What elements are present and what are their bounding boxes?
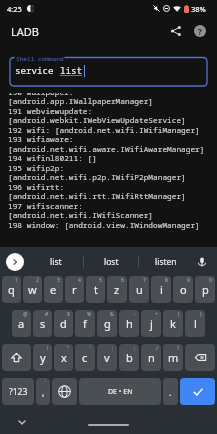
staticText: 198 window: [android.view.IWindowManager…	[8, 220, 200, 231]
staticText: [android.app.IWallpaperManager]	[8, 96, 154, 107]
staticText: w	[28, 282, 37, 297]
staticText: list	[50, 256, 62, 268]
button[interactable]: q	[2, 276, 21, 303]
staticText: a	[18, 316, 25, 331]
staticText: 196 wifirtt:	[8, 182, 65, 193]
staticText: q	[8, 282, 15, 297]
staticText: /	[156, 345, 158, 352]
staticText: ?123	[9, 386, 28, 398]
staticText: ,	[42, 386, 45, 398]
button[interactable]: m	[163, 344, 183, 371]
button[interactable]: j	[141, 310, 161, 337]
button[interactable]: o	[173, 276, 193, 303]
button[interactable]: Share	[164, 19, 188, 43]
button[interactable]: p	[195, 276, 215, 303]
staticText: 4	[78, 277, 81, 284]
staticText: 4:25	[7, 4, 22, 14]
staticText: 3	[57, 277, 60, 284]
button[interactable]: Shift	[2, 344, 31, 371]
staticText: )	[200, 311, 202, 318]
staticText: [android.net.wifi.rtt.IWifiRttManager]	[8, 191, 186, 202]
staticText: :	[112, 345, 114, 352]
staticText: -	[134, 311, 136, 318]
staticText: [android.net.wifi.IWifiScanner]	[8, 210, 154, 221]
button[interactable]: .	[163, 378, 178, 405]
button[interactable]: x	[54, 344, 73, 371]
button[interactable]: ,	[36, 378, 50, 405]
button[interactable]: v	[97, 344, 117, 371]
button[interactable]: s	[33, 310, 52, 337]
staticText: [android.net.wifi.aware.IWifiAwareManage…	[8, 144, 205, 155]
button[interactable]: lost	[84, 247, 138, 276]
staticText: 0	[209, 277, 212, 284]
staticText: z	[114, 282, 120, 297]
button[interactable]: d	[54, 310, 73, 337]
button[interactable]: DE • EN	[79, 378, 161, 405]
button[interactable]: a	[12, 310, 31, 337]
button[interactable]: w	[23, 276, 42, 303]
staticText: m	[168, 350, 179, 365]
staticText: c	[82, 350, 88, 365]
button[interactable]: n	[141, 344, 161, 371]
staticText: ?	[198, 26, 202, 37]
staticText: list	[60, 64, 83, 77]
staticText: $	[67, 311, 70, 318]
staticText: 193 wifiaware:	[8, 134, 74, 145]
staticText: d	[60, 316, 67, 331]
button[interactable]: Voice input	[192, 252, 212, 272]
button[interactable]: r	[65, 276, 84, 303]
staticText: listen	[155, 256, 177, 268]
button[interactable]: Enter	[180, 378, 215, 405]
staticText: x	[61, 350, 67, 365]
button[interactable]: g	[97, 310, 117, 337]
staticText: %	[87, 311, 92, 318]
staticText: (	[178, 311, 180, 318]
button[interactable]: c	[75, 344, 95, 371]
staticText: e	[50, 282, 57, 297]
staticText: 8	[165, 277, 168, 284]
staticText: @	[23, 311, 28, 318]
button[interactable]: Change language	[52, 378, 77, 405]
staticText: '	[90, 345, 92, 352]
staticText: f	[83, 316, 87, 331]
button[interactable]: t	[86, 276, 105, 303]
button[interactable]: h	[119, 310, 139, 337]
button[interactable]: Backspace	[185, 344, 215, 371]
button[interactable]: More suggestions	[6, 253, 24, 271]
staticText: Shell command	[16, 54, 64, 62]
staticText: r	[72, 282, 77, 297]
staticText: LADB	[11, 24, 39, 39]
staticText: l	[194, 316, 197, 331]
button[interactable]: listen	[139, 247, 193, 276]
staticText: 5	[99, 277, 102, 284]
staticText: lost	[104, 256, 119, 268]
staticText: 7	[143, 277, 146, 284]
staticText: !	[47, 345, 49, 352]
button[interactable]: b	[119, 344, 139, 371]
button[interactable]: y	[33, 344, 52, 371]
staticText: u	[136, 282, 143, 297]
staticText: y	[40, 350, 46, 365]
button[interactable]: i	[151, 276, 171, 303]
button[interactable]: z	[107, 276, 127, 303]
button[interactable]: list	[28, 247, 83, 276]
button[interactable]: ?123	[2, 378, 34, 405]
staticText: 2	[36, 277, 39, 284]
staticText: 9	[187, 277, 190, 284]
button[interactable]: Help	[188, 19, 212, 43]
staticText: s	[40, 316, 46, 331]
button[interactable]: l	[185, 310, 205, 337]
button[interactable]: u	[129, 276, 149, 303]
staticText: i	[160, 282, 163, 297]
staticText: '	[45, 379, 47, 386]
staticText: 38%	[191, 4, 206, 14]
staticText: 191 webviewupdate:	[8, 106, 93, 117]
staticText: 6	[121, 277, 124, 284]
staticText: h	[126, 316, 133, 331]
staticText: g	[104, 316, 111, 331]
staticText: [android.webkit.IWebViewUpdateService]	[8, 115, 186, 126]
button[interactable]: e	[44, 276, 63, 303]
button[interactable]: k	[163, 310, 183, 337]
button[interactable]: f	[75, 310, 95, 337]
button[interactable]: Hide keyboard	[13, 413, 31, 431]
